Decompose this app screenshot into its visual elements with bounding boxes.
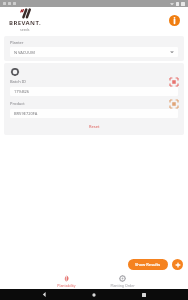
button[interactable]: Show Results xyxy=(128,259,168,270)
staticText: Planting Order xyxy=(110,283,135,288)
staticText: seeds xyxy=(20,27,30,32)
staticText: Planter xyxy=(10,40,24,45)
staticText: BREVANT. xyxy=(9,19,41,27)
staticText: Show Results xyxy=(135,262,161,267)
staticText: Batch ID xyxy=(10,79,26,84)
staticText: Plantability xyxy=(57,283,76,288)
button[interactable]: N VACUUM xyxy=(10,47,178,57)
staticText: 17%B26 xyxy=(14,89,30,94)
staticText: Reset xyxy=(89,124,100,129)
button[interactable]: Scan product barcode xyxy=(169,99,178,108)
button[interactable]: BR59E720FA xyxy=(10,109,178,118)
button[interactable]: Recent apps xyxy=(138,289,150,300)
button[interactable]: Back xyxy=(38,289,50,300)
button[interactable]: Add xyxy=(172,259,183,270)
button[interactable]: Plantability xyxy=(43,274,89,289)
staticText: BR59E720FA xyxy=(14,111,38,116)
staticText: Product xyxy=(10,101,25,106)
button[interactable]: 17%B26 xyxy=(10,87,178,96)
button[interactable]: Home xyxy=(88,289,100,300)
button[interactable]: Settings xyxy=(10,67,19,76)
staticText: N VACUUM xyxy=(14,50,35,55)
button[interactable]: Planting Order xyxy=(99,274,145,289)
button[interactable]: Scan batch barcode xyxy=(169,77,178,86)
button[interactable]: Information xyxy=(169,15,180,26)
button[interactable]: Reset xyxy=(10,122,178,131)
